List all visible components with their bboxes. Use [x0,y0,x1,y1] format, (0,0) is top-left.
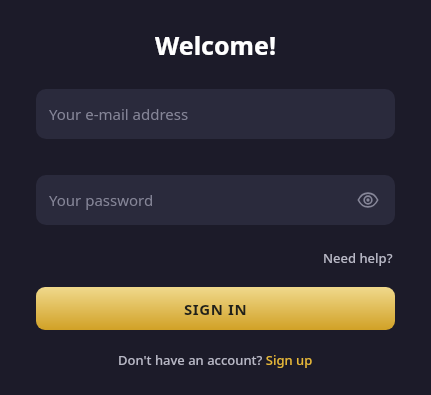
staticText: Your e-mail address [49,104,189,124]
staticText: Need help? [323,249,393,267]
button[interactable]: Show password [354,186,382,214]
staticText: Don't have an account? Sign up [118,351,313,369]
staticText: Your password [49,190,154,210]
button[interactable]: Your e-mail address [36,89,395,139]
button[interactable]: SIGN IN [36,287,395,330]
staticText: SIGN IN [184,299,248,319]
button[interactable]: Need help? [321,247,395,269]
button[interactable]: Your password [36,175,395,225]
button[interactable]: Don't have an account? Sign up [116,349,315,371]
staticText: Welcome! [36,28,395,62]
